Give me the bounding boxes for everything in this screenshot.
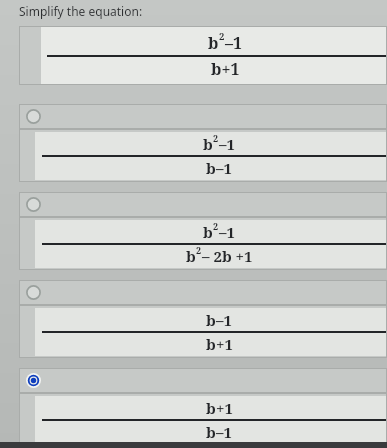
staticText: b — [206, 334, 216, 354]
staticText: b — [206, 398, 216, 418]
staticText: b — [203, 222, 213, 242]
staticText: b — [186, 246, 196, 266]
staticText: – 2b +1 — [202, 246, 253, 266]
staticText: b+1 — [211, 58, 240, 80]
staticText: Simplify the equation: — [19, 3, 143, 19]
staticText: 2 — [213, 132, 219, 144]
staticText: b — [208, 32, 219, 54]
button[interactable]: b — [19, 393, 387, 446]
staticText: –1 — [216, 310, 232, 330]
staticText: b — [206, 310, 216, 330]
staticText: +1 — [216, 334, 233, 354]
staticText: 2 — [196, 244, 202, 256]
staticText: b — [206, 158, 216, 178]
staticText: 2 — [219, 30, 225, 43]
staticText: –1 — [216, 422, 232, 442]
button[interactable]: Select answer option — [19, 192, 387, 217]
button[interactable]: b — [19, 217, 387, 270]
staticText: 2 — [213, 220, 219, 232]
button[interactable]: Select answer option — [19, 368, 387, 393]
staticText: +1 — [216, 398, 233, 418]
staticText: b — [206, 422, 216, 442]
button[interactable]: Select answer option — [19, 104, 387, 129]
button[interactable]: b — [19, 305, 387, 358]
staticText: –1 — [219, 222, 235, 242]
button[interactable]: Select answer option — [19, 280, 387, 305]
staticText: –1 — [219, 134, 235, 154]
button[interactable]: b — [19, 129, 387, 182]
staticText: –1 — [216, 158, 232, 178]
staticText: –1 — [225, 32, 243, 54]
staticText: b — [203, 134, 213, 154]
